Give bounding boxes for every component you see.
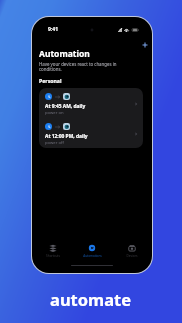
- button[interactable]: Devices: [113, 244, 151, 258]
- button[interactable]: Add automation: [140, 42, 149, 48]
- staticText: Have your devices react to changes in co…: [39, 61, 125, 72]
- staticText: Personal: [39, 77, 62, 84]
- staticText: Automation: [39, 48, 90, 60]
- staticText: Devices: [126, 254, 138, 258]
- button[interactable]: Automations: [73, 244, 111, 258]
- staticText: Shortcuts: [46, 254, 60, 258]
- staticText: 9:41: [48, 26, 58, 33]
- button[interactable]: At 9:45 AM, daily: [39, 88, 143, 118]
- staticText: power on: [45, 110, 64, 115]
- staticText: At 9:45 AM, daily: [45, 103, 86, 110]
- staticText: automate: [50, 288, 132, 310]
- staticText: power off: [45, 140, 64, 145]
- button[interactable]: Shortcuts: [34, 244, 72, 258]
- staticText: At 12:00 PM, daily: [45, 133, 88, 140]
- staticText: Automations: [83, 254, 102, 258]
- button[interactable]: At 12:00 PM, daily: [39, 118, 143, 148]
